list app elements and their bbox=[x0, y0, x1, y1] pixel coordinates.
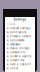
staticText: Accessibility bbox=[10, 51, 25, 54]
button[interactable]: Sound & Haptics bbox=[5, 54, 35, 58]
staticText: GENERAL bbox=[7, 23, 16, 26]
staticText: Data & Storage bbox=[10, 47, 29, 50]
button[interactable]: Data & Storage bbox=[5, 46, 35, 50]
button[interactable]: Notifications bbox=[5, 30, 35, 34]
staticText: Account Settings bbox=[10, 27, 30, 30]
staticText: Settings bbox=[13, 18, 26, 21]
staticText: Screen Time bbox=[10, 59, 24, 62]
staticText: Language bbox=[10, 43, 20, 46]
button[interactable]: Account Settings bbox=[5, 26, 35, 30]
staticText: Appearance bbox=[10, 39, 24, 42]
button[interactable]: Privacy & Security bbox=[5, 34, 35, 38]
staticText: About bbox=[10, 67, 18, 70]
staticText: Sound & Haptics bbox=[10, 55, 31, 58]
button[interactable]: About bbox=[5, 66, 35, 70]
staticText: Help & Support bbox=[10, 63, 31, 66]
staticText: Privacy & Security bbox=[10, 35, 31, 38]
button[interactable]: Accessibility bbox=[5, 50, 35, 54]
button[interactable]: Appearance bbox=[5, 38, 35, 42]
button[interactable]: Help & Support bbox=[5, 62, 35, 66]
staticText: Notifications bbox=[10, 31, 26, 34]
button[interactable]: Screen Time bbox=[5, 58, 35, 62]
button[interactable]: Language bbox=[5, 42, 35, 46]
